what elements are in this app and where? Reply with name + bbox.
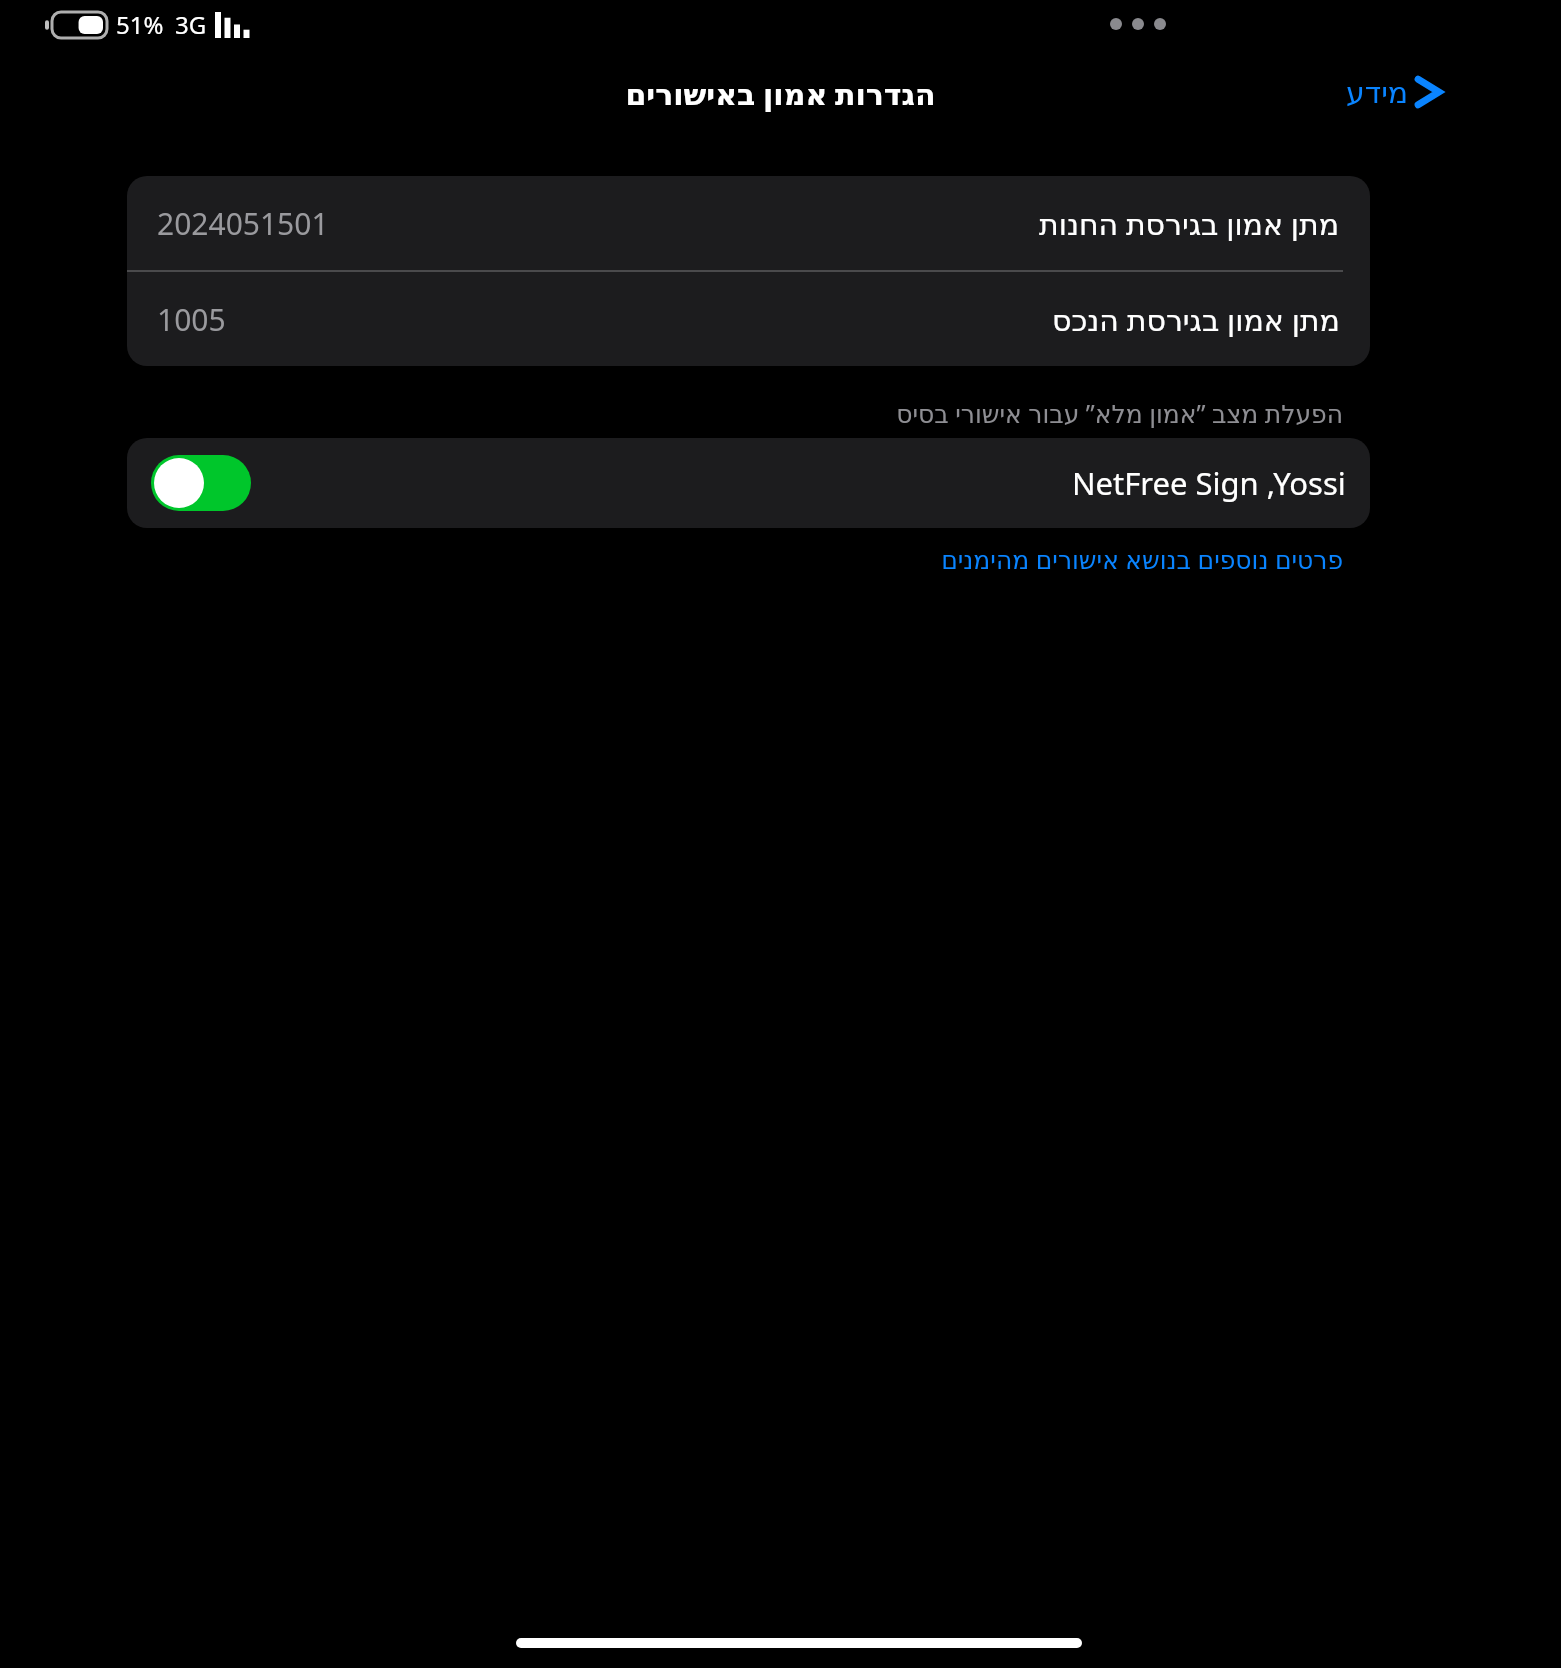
staticText: 1005 — [157, 299, 226, 340]
button[interactable]: 1005 — [127, 272, 1370, 366]
staticText: מידע — [1346, 75, 1409, 110]
button[interactable]: מידע — [1340, 66, 1447, 118]
staticText: מתן אמון בגירסת החנות — [1039, 203, 1340, 244]
staticText: 2024051501 — [157, 203, 329, 244]
staticText: 51% — [116, 8, 164, 41]
staticText: הפעלת מצב ”אמון מלא” עבור אישורי בסיס — [127, 396, 1343, 430]
staticText: 3G — [175, 8, 207, 41]
staticText: NetFree Sign ,Yossi — [1072, 462, 1346, 504]
button[interactable]: 2024051501 — [127, 176, 1370, 270]
other: מצב אמון מלא — [151, 455, 251, 511]
staticText: הגדרות אמון באישורים — [0, 73, 1561, 114]
staticText: מתן אמון בגירסת הנכס — [1052, 299, 1340, 340]
button[interactable]: מצב אמון מלא — [127, 438, 1370, 528]
button[interactable]: פרטים נוספים בנושא אישורים מהימנים — [127, 538, 1343, 580]
